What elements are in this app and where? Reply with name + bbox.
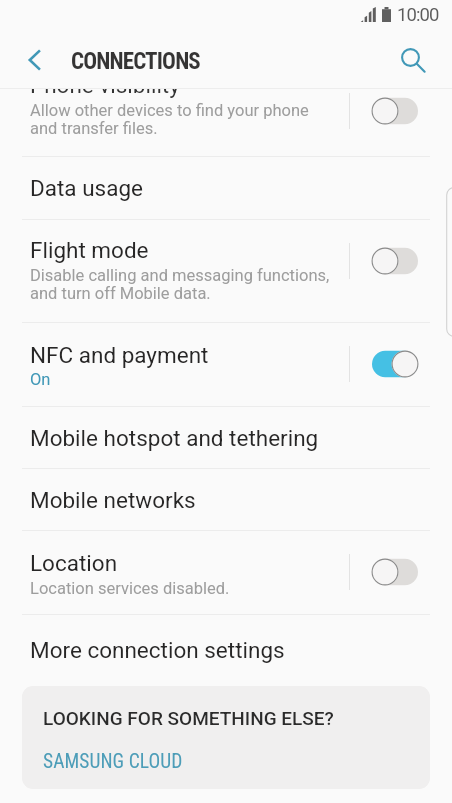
staticText: Mobile hotspot and tethering (30, 425, 319, 451)
staticText: 10:00 (397, 4, 439, 26)
staticText: CONNECTIONS (71, 48, 200, 75)
staticText: Flight mode (30, 237, 149, 263)
button[interactable]: NFC and payment (0, 323, 452, 406)
button[interactable]: Mobile networks (0, 469, 452, 531)
staticText: LOOKING FOR SOMETHING ELSE? (43, 707, 334, 729)
button[interactable]: Mobile hotspot and tethering (0, 407, 452, 469)
button[interactable]: Phone visibility (0, 89, 452, 156)
staticText: NFC and payment (30, 342, 209, 368)
staticText: More connection settings (30, 637, 285, 663)
staticText: Mobile networks (30, 487, 196, 513)
staticText: Data usage (30, 175, 144, 201)
staticText: Allow other devices to find your phone a… (30, 101, 309, 138)
staticText: On (30, 370, 51, 389)
button[interactable]: Turn on (372, 557, 418, 587)
button[interactable]: Flight mode (0, 220, 452, 323)
staticText: SAMSUNG CLOUD (43, 750, 183, 773)
staticText: Location (30, 550, 118, 576)
staticText: Location services disabled. (30, 579, 230, 598)
button[interactable]: Turn on (372, 246, 418, 276)
button[interactable]: More connection settings (0, 615, 452, 685)
button[interactable]: Search (393, 40, 437, 82)
button[interactable]: LOOKING FOR SOMETHING ELSE? (22, 686, 430, 789)
button[interactable]: Location (0, 531, 452, 614)
button[interactable]: Turn on (372, 96, 418, 126)
staticText: Disable calling and messaging functions,… (30, 266, 330, 303)
button[interactable]: Navigate up (13, 39, 57, 81)
button[interactable]: Turn off (372, 349, 418, 379)
button[interactable]: Data usage (0, 157, 452, 219)
staticText: Phone visibility (30, 89, 180, 98)
